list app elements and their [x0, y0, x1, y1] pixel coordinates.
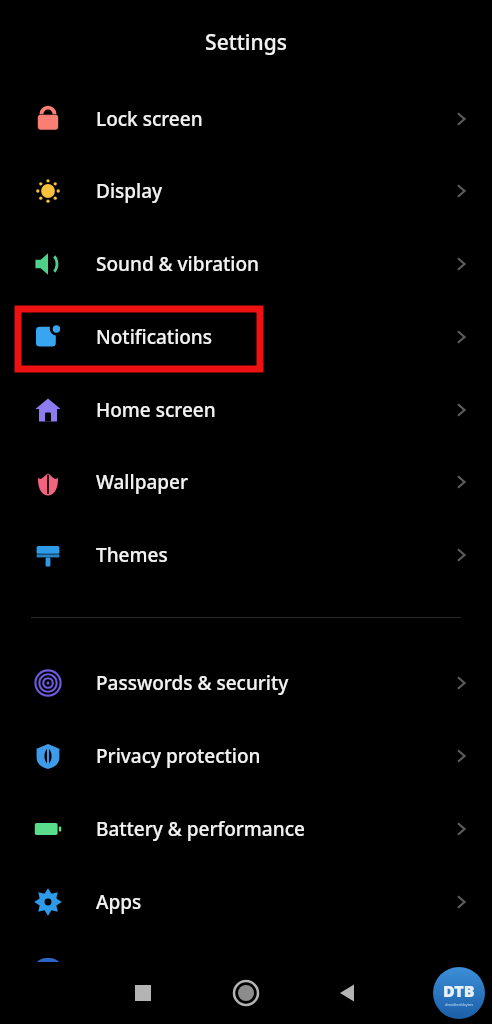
staticText: Home screen — [96, 397, 216, 423]
staticText: Settings — [205, 28, 287, 57]
staticText: Display — [96, 178, 163, 204]
staticText: Wallpaper — [96, 469, 188, 495]
button[interactable]: Privacy protection — [0, 720, 492, 792]
button[interactable]: Display — [0, 155, 492, 227]
button[interactable]: Home — [221, 968, 271, 1018]
staticText: droidtechbytes — [445, 1002, 474, 1007]
staticText: Lock screen — [96, 106, 203, 132]
staticText: DTB — [443, 980, 475, 1002]
staticText: Privacy protection — [96, 743, 261, 769]
button[interactable]: Home screen — [0, 374, 492, 446]
staticText: Apps — [96, 889, 142, 915]
staticText: Themes — [96, 542, 168, 568]
button[interactable]: Wallpaper — [0, 446, 492, 518]
staticText: Notifications — [96, 324, 213, 350]
button[interactable]: Notifications — [0, 301, 492, 373]
button[interactable]: Themes — [0, 519, 492, 591]
button[interactable]: Recent apps — [118, 968, 168, 1018]
staticText: Passwords & security — [96, 670, 289, 696]
button[interactable]: Back — [322, 968, 372, 1018]
button[interactable]: Lock screen — [0, 83, 492, 155]
button[interactable]: Battery & performance — [0, 793, 492, 865]
staticText: Battery & performance — [96, 816, 305, 842]
button[interactable]: Sound & vibration — [0, 228, 492, 300]
button[interactable]: Passwords & security — [0, 647, 492, 719]
button[interactable]: Apps — [0, 866, 492, 938]
staticText: Sound & vibration — [96, 251, 259, 277]
